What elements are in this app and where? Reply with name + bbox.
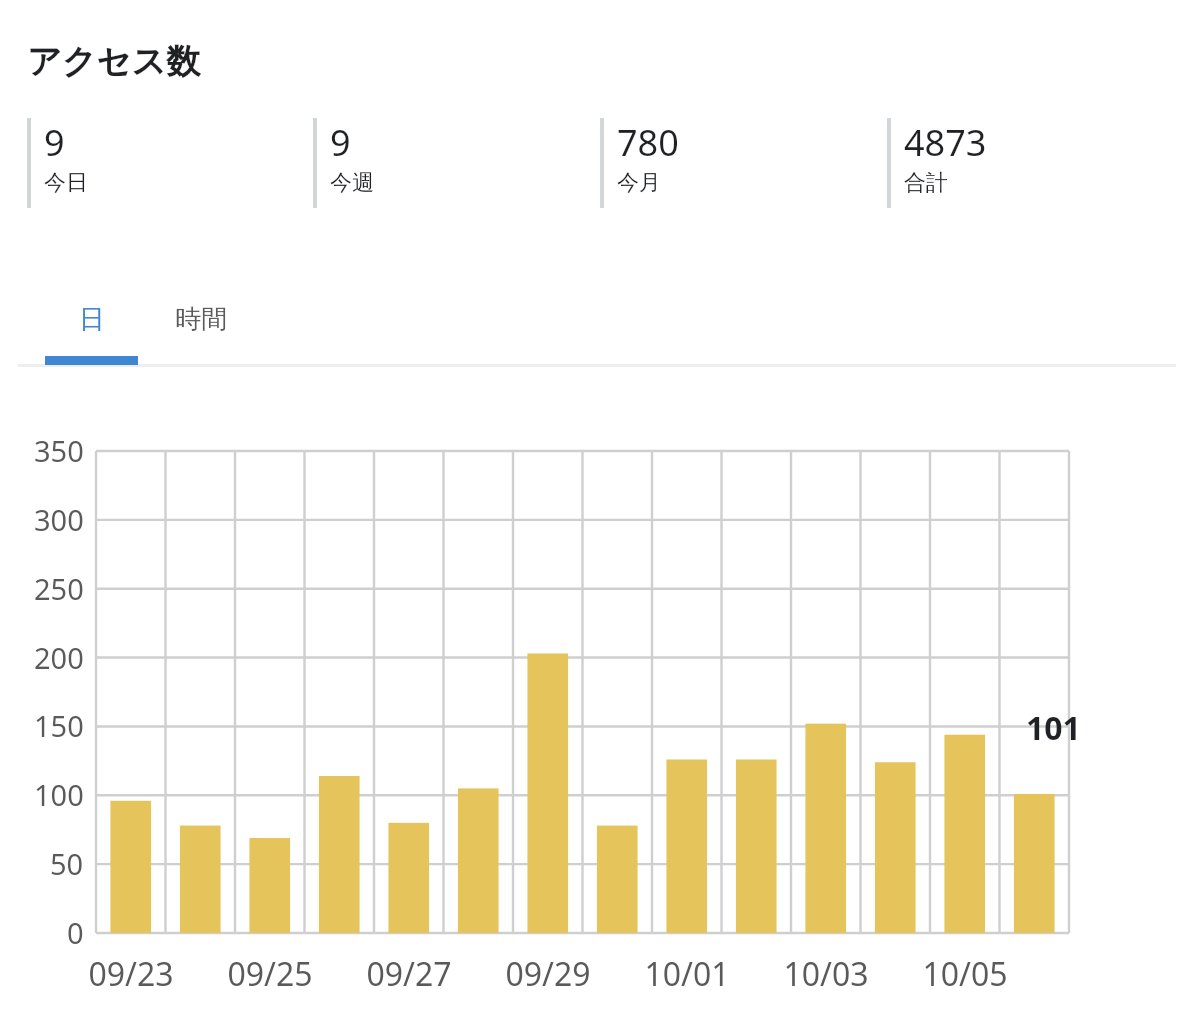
staticText: 今月 xyxy=(617,169,661,197)
staticText: 250 xyxy=(34,569,84,608)
staticText: 150 xyxy=(34,706,84,745)
staticText: 10/03 xyxy=(783,952,869,996)
staticText: アクセス数 xyxy=(27,40,201,83)
staticText: 日 xyxy=(79,303,105,336)
staticText: 今週 xyxy=(330,169,374,197)
staticText: 9 xyxy=(330,118,351,167)
staticText: 4873 xyxy=(904,118,987,167)
staticText: 780 xyxy=(617,118,679,167)
staticText: 時間 xyxy=(175,303,227,336)
staticText: 9 xyxy=(44,118,65,167)
button[interactable]: 780 xyxy=(600,118,865,208)
staticText: 09/29 xyxy=(505,952,591,996)
button[interactable]: 時間 xyxy=(138,288,263,350)
staticText: 50 xyxy=(50,844,84,883)
button[interactable]: 4873 xyxy=(887,118,1152,208)
staticText: 09/27 xyxy=(366,952,452,996)
staticText: 300 xyxy=(34,500,84,539)
staticText: 今日 xyxy=(44,169,88,197)
button[interactable]: 日 xyxy=(45,288,138,350)
button[interactable]: 9 xyxy=(27,118,292,208)
staticText: 09/23 xyxy=(88,952,174,996)
staticText: 101 xyxy=(1026,706,1081,750)
staticText: 10/01 xyxy=(644,952,730,996)
staticText: 10/05 xyxy=(922,952,1008,996)
staticText: 0 xyxy=(67,913,84,952)
staticText: 合計 xyxy=(904,169,948,197)
staticText: 100 xyxy=(34,775,84,814)
button[interactable]: 9 xyxy=(313,118,578,208)
staticText: 09/25 xyxy=(227,952,313,996)
staticText: 200 xyxy=(34,638,84,677)
staticText: 350 xyxy=(34,431,84,470)
